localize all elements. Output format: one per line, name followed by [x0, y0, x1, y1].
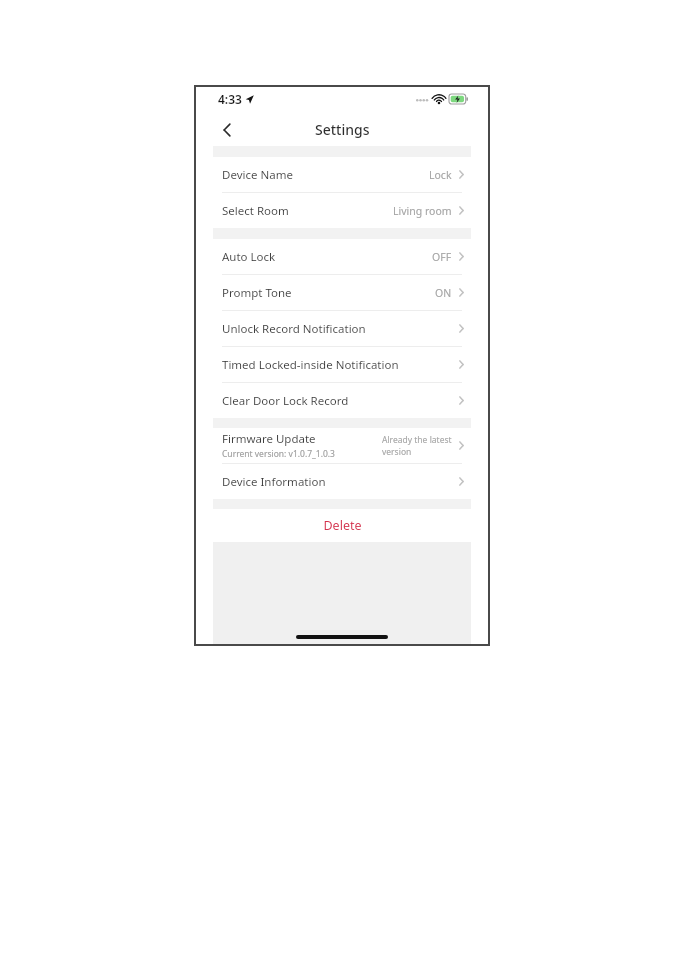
- button[interactable]: Timed Locked-inside Notification: [194, 347, 490, 382]
- staticText: ON: [435, 286, 452, 300]
- staticText: Already the latest: [382, 434, 452, 446]
- staticText: Auto Lock: [222, 249, 276, 265]
- button[interactable]: Select Room: [194, 193, 490, 228]
- staticText: Unlock Record Notification: [222, 321, 366, 337]
- staticText: Delete: [323, 517, 362, 534]
- staticText: Select Room: [222, 203, 289, 219]
- staticText: Current version: v1.0.7_1.0.3: [222, 448, 335, 460]
- staticText: Settings: [315, 120, 370, 139]
- button[interactable]: Device Information: [194, 464, 490, 499]
- button[interactable]: Firmware Update: [194, 428, 490, 463]
- staticText: version: [382, 446, 412, 458]
- staticText: Firmware Update: [222, 431, 316, 447]
- staticText: 4:33: [218, 91, 242, 107]
- button[interactable]: Prompt Tone: [194, 275, 490, 310]
- staticText: Device Information: [222, 474, 326, 490]
- staticText: Living room: [393, 204, 452, 218]
- staticText: Timed Locked-inside Notification: [222, 357, 399, 373]
- button[interactable]: Unlock Record Notification: [194, 311, 490, 346]
- button[interactable]: Clear Door Lock Record: [194, 383, 490, 418]
- staticText: Clear Door Lock Record: [222, 393, 349, 409]
- staticText: OFF: [432, 250, 452, 264]
- button[interactable]: Back: [212, 115, 242, 145]
- staticText: Device Name: [222, 167, 293, 183]
- button[interactable]: Auto Lock: [194, 239, 490, 274]
- staticText: Prompt Tone: [222, 285, 292, 301]
- button[interactable]: Device Name: [194, 157, 490, 192]
- button[interactable]: Delete: [194, 509, 490, 542]
- staticText: Lock: [429, 168, 452, 182]
